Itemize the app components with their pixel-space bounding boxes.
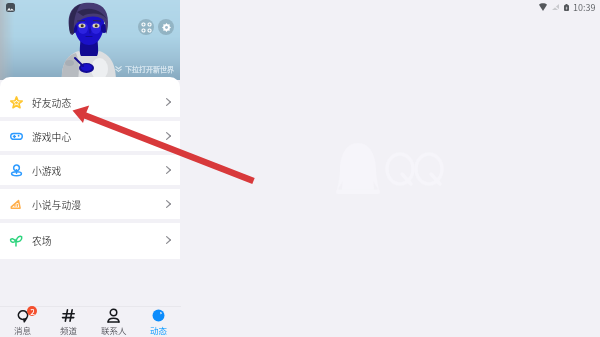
button[interactable]: Apps [138, 19, 154, 35]
button[interactable]: 动态 [136, 306, 181, 337]
button[interactable]: 2 [0, 306, 46, 337]
button[interactable]: 好友动态 [0, 87, 180, 117]
staticText: 动态 [150, 324, 168, 336]
staticText: 农场 [32, 234, 52, 248]
button[interactable]: Image [6, 3, 15, 12]
staticText: 小说与动漫 [32, 198, 81, 212]
staticText: 频道 [60, 324, 78, 336]
staticText: 游戏中心 [32, 130, 72, 144]
button[interactable]: 小游戏 [0, 155, 180, 185]
button[interactable]: 农场 [0, 223, 180, 257]
button[interactable]: 联系人 [91, 306, 136, 337]
staticText: 小游戏 [32, 164, 62, 178]
staticText: 好友动态 [32, 96, 72, 110]
staticText: 联系人 [101, 324, 127, 336]
staticText: 10:39 [573, 1, 596, 14]
button[interactable]: 频道 [46, 306, 91, 337]
staticText: 下拉打开新世界 [125, 64, 174, 74]
button[interactable]: 小说与动漫 [0, 189, 180, 219]
button[interactable]: Settings [158, 19, 174, 35]
staticText: 消息 [14, 324, 32, 336]
button[interactable]: 游戏中心 [0, 121, 180, 151]
staticText: 2 [30, 306, 35, 316]
